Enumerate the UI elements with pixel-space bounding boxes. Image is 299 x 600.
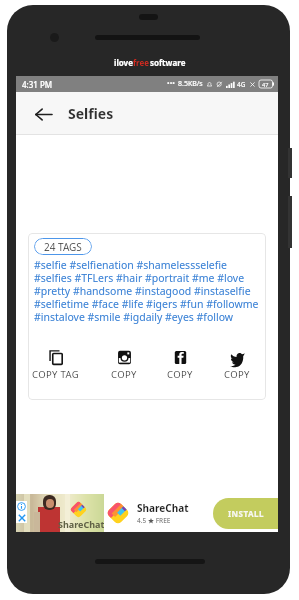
staticText: Selfies (68, 104, 114, 123)
button[interactable]: Back (24, 95, 62, 133)
button[interactable]: COPY TAG (30, 348, 82, 383)
staticText: ShareChat (58, 518, 105, 530)
staticText: COPY (111, 368, 137, 381)
button[interactable]: COPY (165, 348, 195, 383)
staticText: ShareChat (137, 501, 189, 515)
staticText: FREE (154, 516, 171, 525)
staticText: ilove (114, 57, 133, 68)
button[interactable]: INSTALL (213, 498, 278, 529)
staticText: free (133, 57, 150, 68)
staticText: 24 TAGS (44, 240, 82, 254)
staticText: COPY (167, 368, 193, 381)
staticText: 8.5KB/s (178, 79, 203, 89)
button[interactable]: COPY (222, 348, 252, 383)
staticText: #selfie #selfienation #shamelessselefie … (34, 258, 260, 325)
staticText: 4G (237, 80, 246, 89)
staticText: 47 (262, 81, 269, 88)
button[interactable]: COPY (109, 348, 139, 383)
staticText: INSTALL (228, 508, 265, 519)
staticText: COPY TAG (32, 368, 80, 381)
staticText: COPY (224, 368, 250, 381)
staticText: ••• (167, 79, 175, 89)
staticText: 4:31 PM (22, 79, 53, 90)
staticText: 4.5 (137, 516, 148, 525)
button[interactable]: 24 TAGS (34, 238, 92, 255)
staticText: software (150, 57, 186, 68)
